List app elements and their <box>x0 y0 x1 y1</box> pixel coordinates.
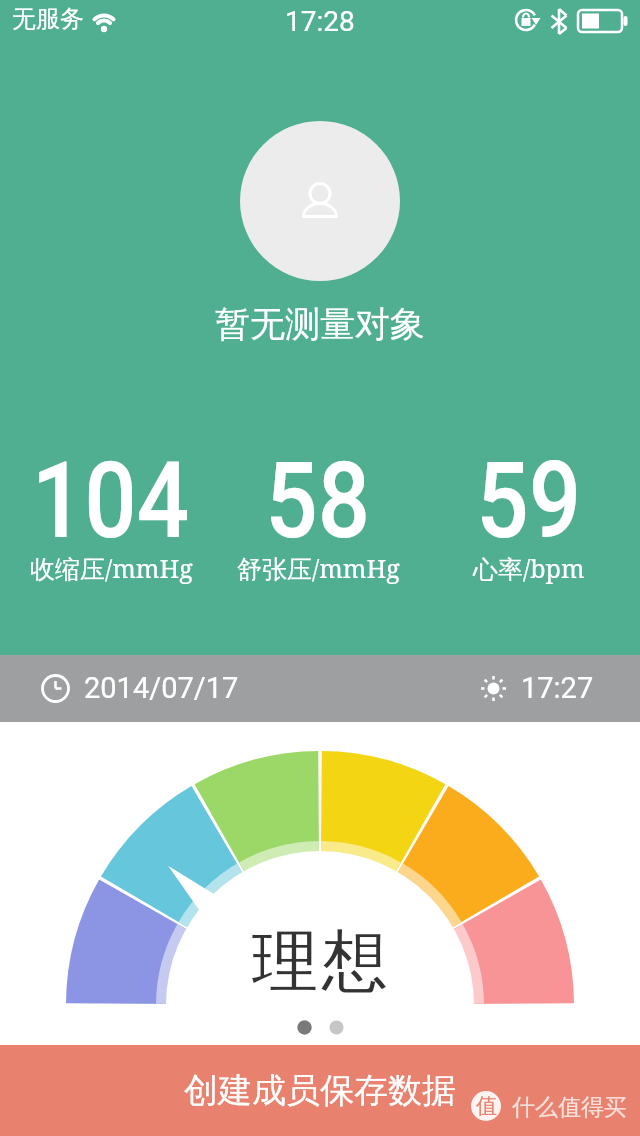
staticText: 心率/bpm <box>473 551 585 585</box>
staticText: 2014/07/17 <box>84 671 239 705</box>
staticText: 59 <box>476 440 582 560</box>
staticText: 舒张压/mmHg <box>237 551 400 585</box>
button[interactable]: 创建成员保存数据 <box>0 1045 640 1136</box>
staticText: 暂无测量对象 <box>215 302 425 346</box>
staticText: 收缩压/mmHg <box>30 551 193 585</box>
button[interactable] <box>240 121 400 281</box>
staticText: 无服务 <box>12 4 84 34</box>
button[interactable]: 2014/07/17 <box>0 655 640 722</box>
staticText: 17:28 <box>285 5 355 38</box>
staticText: 104 <box>32 440 190 560</box>
staticText: 创建成员保存数据 <box>184 1069 456 1112</box>
staticText: 值 <box>476 1093 497 1119</box>
staticText: 17:27 <box>521 671 594 705</box>
staticText: 58 <box>265 440 371 560</box>
staticText: 理想 <box>250 920 390 1003</box>
staticText: 什么值得买 <box>512 1093 627 1122</box>
